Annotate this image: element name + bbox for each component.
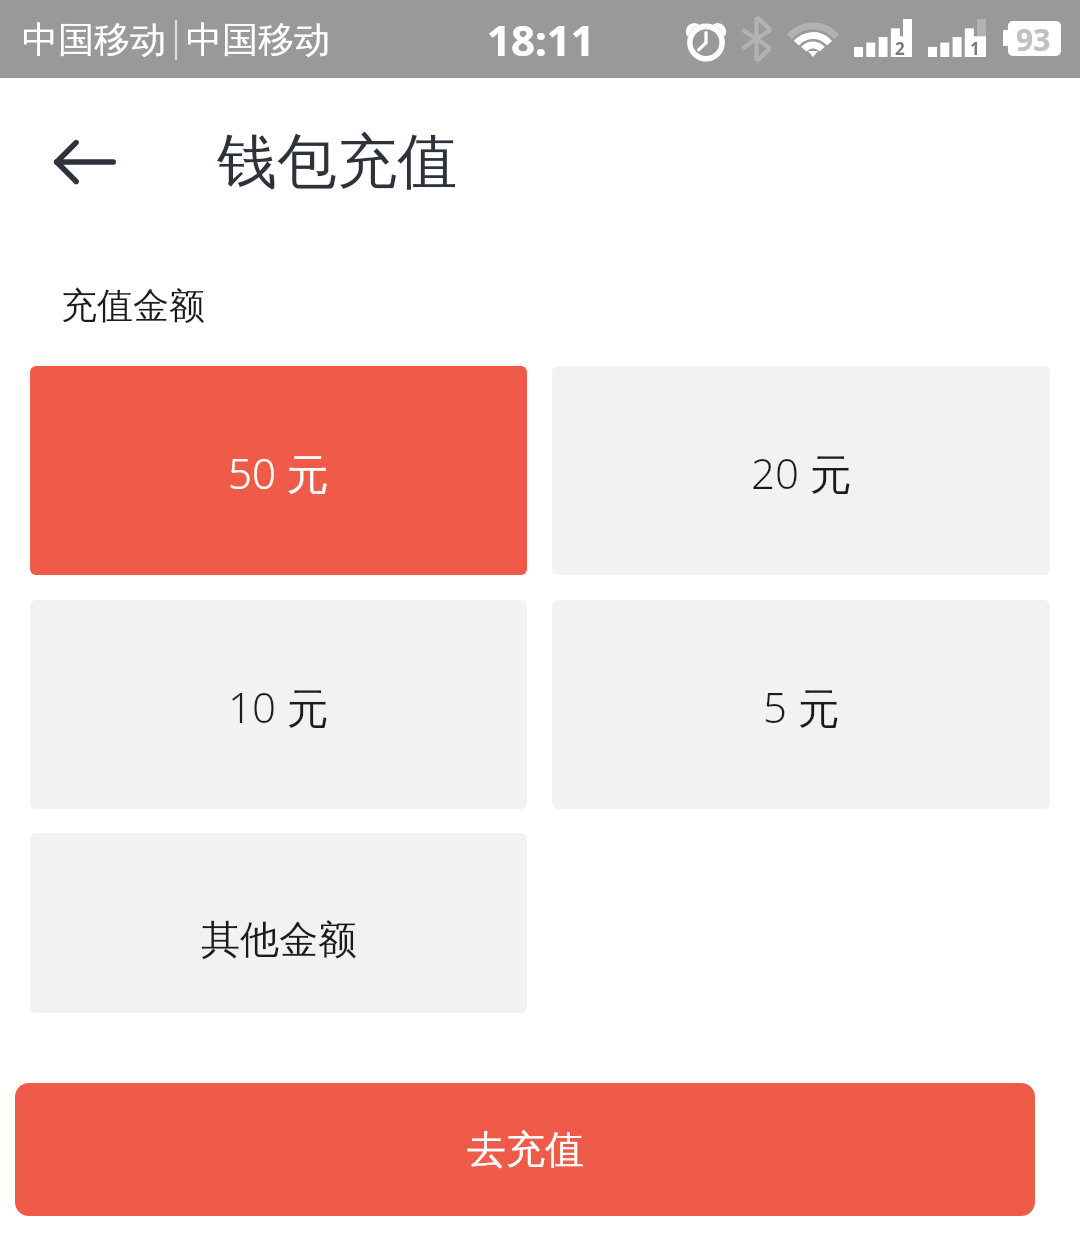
staticText: 93: [1016, 19, 1051, 60]
button[interactable]: 20 元: [552, 366, 1050, 575]
staticText: 10 元: [228, 678, 329, 735]
button[interactable]: 50 元: [30, 366, 527, 575]
staticText: 20 元: [751, 444, 852, 501]
staticText: 中国移动: [22, 17, 166, 62]
staticText: 1: [970, 37, 980, 60]
staticText: 5 元: [763, 678, 840, 735]
staticText: 2: [895, 37, 905, 60]
button[interactable]: 5 元: [552, 600, 1050, 809]
staticText: 18:11: [487, 11, 595, 68]
staticText: 钱包充值: [217, 124, 457, 200]
staticText: 50 元: [228, 444, 329, 501]
staticText: 中国移动: [186, 17, 330, 62]
button[interactable]: 其他金额: [30, 833, 527, 1042]
button[interactable]: 10 元: [30, 600, 527, 809]
button[interactable]: Back: [25, 116, 145, 208]
staticText: 去充值: [467, 1125, 584, 1174]
staticText: 其他金额: [201, 915, 357, 964]
button[interactable]: 去充值: [15, 1083, 1035, 1216]
staticText: 充值金额: [61, 283, 205, 328]
